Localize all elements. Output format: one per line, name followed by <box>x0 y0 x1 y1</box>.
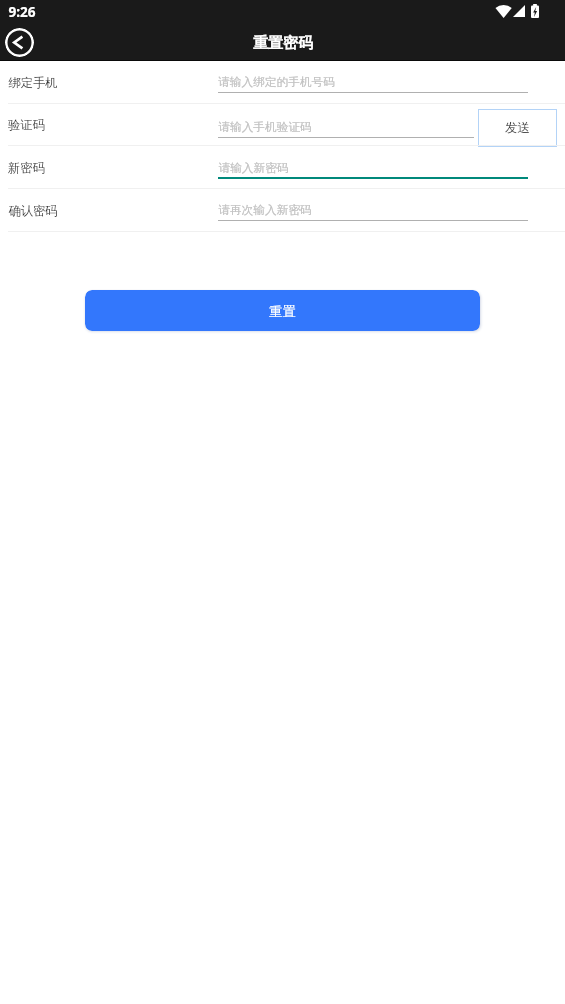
staticText: 重置 <box>269 303 296 320</box>
button[interactable]: 发送 <box>478 109 557 147</box>
staticText: 确认密码 <box>8 203 58 218</box>
button[interactable]: 请输入绑定的手机号码 <box>218 61 528 104</box>
button[interactable]: 请输入手机验证码 <box>218 106 474 149</box>
button[interactable]: Back <box>5 28 34 57</box>
staticText: 新密码 <box>8 160 45 175</box>
staticText: 发送 <box>505 120 530 136</box>
staticText: 绑定手机 <box>8 75 58 90</box>
staticText: 请输入新密码 <box>218 161 289 176</box>
staticText: 重置密码 <box>253 34 313 53</box>
staticText: 请再次输入新密码 <box>218 203 312 218</box>
staticText: 请输入绑定的手机号码 <box>218 75 335 90</box>
staticText: 请输入手机验证码 <box>218 120 312 135</box>
button[interactable]: 重置 <box>85 290 480 331</box>
staticText: 验证码 <box>8 117 45 132</box>
button[interactable]: 请再次输入新密码 <box>218 189 528 232</box>
button[interactable]: 请输入新密码 <box>218 147 528 190</box>
staticText: 9:26 <box>8 2 36 21</box>
